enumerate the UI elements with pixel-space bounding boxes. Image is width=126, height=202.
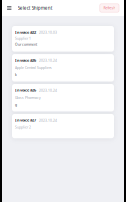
staticText: Apple Central Suppliers [15, 65, 52, 70]
button[interactable]: Invoice #26 [12, 54, 114, 81]
staticText: g [15, 102, 17, 107]
button[interactable]: Invoice #27 [12, 114, 114, 138]
button[interactable]: Menu [3, 0, 15, 16]
staticText: 2023-10-24 [39, 58, 57, 63]
staticText: Glass Pharmacy [15, 95, 41, 100]
staticText: Invoice #22 [15, 29, 36, 35]
button[interactable]: Refresh [100, 4, 119, 12]
staticText: Invoice #26 [15, 87, 36, 93]
button[interactable]: Invoice #22 [12, 26, 114, 52]
staticText: Invoice #27 [15, 117, 36, 123]
staticText: 2023-10-24 [39, 88, 57, 93]
staticText: Supplier 1 [15, 36, 31, 41]
staticText: Invoice #26 [15, 57, 36, 63]
staticText: k [15, 73, 17, 77]
staticText: Our comment [15, 42, 37, 47]
button[interactable]: Invoice #26 [12, 84, 114, 111]
staticText: 2023-10-03 [39, 30, 57, 35]
staticText: 2023-10-24 [39, 118, 57, 123]
staticText: Supplier 2 [15, 125, 31, 129]
staticText: Refresh [103, 6, 115, 10]
staticText: Select Shipment [18, 5, 53, 11]
